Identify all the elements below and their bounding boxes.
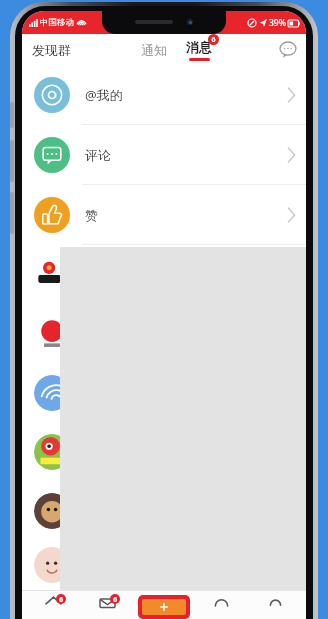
button[interactable] [22,363,306,422]
staticText: 6 [113,595,117,604]
button[interactable]: Messages [85,595,129,619]
button[interactable] [22,245,306,304]
staticText: 6 [211,35,216,45]
staticText: 评论 [85,147,111,163]
button[interactable] [22,304,306,363]
button[interactable]: 消息 [184,39,214,61]
button[interactable]: Chat [276,38,300,62]
button[interactable]: Compose [138,595,190,619]
button[interactable] [22,422,306,481]
button[interactable]: Discover [199,595,243,619]
button[interactable] [22,481,306,540]
button[interactable]: @我的 [22,65,306,124]
button[interactable]: 评论 [22,125,306,184]
button[interactable]: Home [31,595,75,619]
staticText: @我的 [85,86,123,104]
button[interactable]: Profile [253,595,297,619]
staticText: 6 [59,595,63,604]
button[interactable]: 发现群 [30,38,73,62]
staticText: 消息 [186,39,212,55]
button[interactable]: 通知 [139,38,169,62]
staticText: 中国移动 [40,17,74,28]
staticText: 赞 [85,207,98,223]
button[interactable]: 赞 [22,185,306,244]
button[interactable] [22,540,306,590]
staticText: 39% [269,17,286,29]
